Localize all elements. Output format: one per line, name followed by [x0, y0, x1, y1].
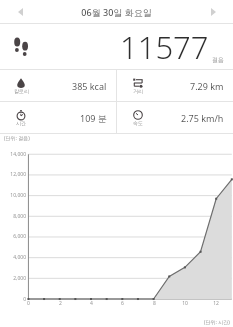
staticText: 109 분: [80, 112, 107, 124]
button[interactable]: 시간: [0, 102, 116, 133]
staticText: (단위: 걸음): [4, 135, 30, 142]
staticText: 10: [182, 300, 188, 307]
staticText: 06월 30일 화요일: [81, 6, 152, 18]
staticText: 11577: [120, 26, 209, 68]
staticText: 8: [153, 300, 156, 307]
staticText: 걸음: [212, 56, 224, 64]
button[interactable]: Previous day: [7, 0, 33, 23]
staticText: 6,000: [13, 233, 26, 240]
button[interactable]: Next day: [200, 0, 226, 23]
staticText: 10,000: [10, 192, 26, 199]
staticText: 2.75 km/h: [181, 112, 224, 124]
staticText: 4: [90, 300, 93, 307]
staticText: 0: [27, 300, 30, 307]
staticText: 385 kcal: [72, 80, 107, 92]
staticText: 시간: [16, 120, 26, 126]
staticText: (단위: 시간): [204, 319, 230, 326]
staticText: 거리: [133, 88, 143, 94]
staticText: 4,000: [13, 254, 26, 261]
staticText: 2: [59, 300, 62, 307]
button[interactable]: 속도: [117, 102, 233, 133]
staticText: 12,000: [10, 171, 26, 178]
staticText: 속도: [133, 120, 143, 126]
staticText: 7.29 km: [190, 80, 224, 92]
staticText: 14,000: [10, 151, 26, 158]
staticText: 2,000: [13, 275, 26, 282]
other: Steps: [13, 35, 33, 59]
staticText: 12: [213, 300, 219, 307]
button[interactable]: Steps: [0, 24, 233, 69]
button[interactable]: 거리: [117, 70, 233, 101]
staticText: 8,000: [13, 213, 26, 220]
staticText: 칼로리: [14, 88, 29, 94]
button[interactable]: 칼로리: [0, 70, 116, 101]
staticText: 0: [23, 296, 26, 303]
staticText: 6: [121, 300, 124, 307]
